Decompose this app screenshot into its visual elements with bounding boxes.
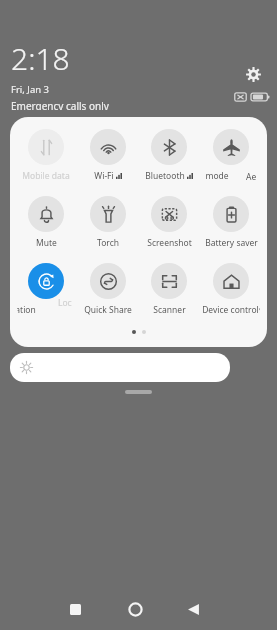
button[interactable]: Wi-Fi <box>79 127 137 184</box>
staticText: mode <box>205 170 229 182</box>
staticText: Scanner <box>153 304 186 316</box>
button[interactable]: tation <box>17 261 75 318</box>
button[interactable]: Brightness <box>10 353 230 382</box>
staticText: Torch <box>97 237 119 249</box>
button[interactable]: Screenshot <box>140 194 198 251</box>
button[interactable]: Back <box>178 594 208 624</box>
staticText: Device controls <box>202 304 260 316</box>
button[interactable]: Torch <box>79 194 137 251</box>
button[interactable]: Recent apps <box>60 594 90 624</box>
staticText: 2:18 <box>11 38 70 79</box>
staticText: Emergency calls only <box>11 99 109 110</box>
staticText: Mute <box>36 237 57 249</box>
staticText: Wi-Fi <box>94 170 114 182</box>
button[interactable]: Mute <box>17 194 75 251</box>
button[interactable]: Battery saver <box>202 194 260 251</box>
button[interactable]: Home <box>120 594 150 624</box>
button[interactable]: Mobile data <box>17 127 75 184</box>
staticText: Bluetooth <box>145 170 185 182</box>
button[interactable]: Scanner <box>140 261 198 318</box>
button[interactable]: Quick Share <box>79 261 137 318</box>
staticText: Battery saver <box>205 237 258 249</box>
staticText: Quick Share <box>84 304 132 316</box>
button[interactable]: mode <box>202 127 260 184</box>
button[interactable]: Device controls <box>202 261 260 318</box>
button[interactable]: Bluetooth <box>140 127 198 184</box>
button[interactable]: Settings <box>241 62 265 86</box>
staticText: Fri, Jan 3 <box>11 83 50 96</box>
staticText: Ae <box>246 171 257 183</box>
staticText: Loc <box>58 297 72 309</box>
staticText: Screenshot <box>147 237 192 249</box>
staticText: Mobile data <box>22 170 70 182</box>
staticText: tation <box>17 304 36 316</box>
